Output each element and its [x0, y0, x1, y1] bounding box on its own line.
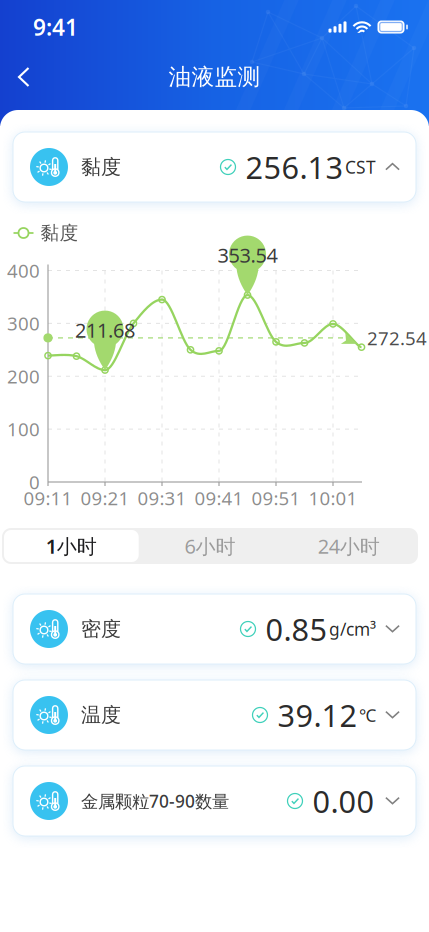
staticText: 09:51	[251, 486, 300, 510]
staticText: 39.12	[277, 695, 357, 735]
staticText: ℃	[359, 703, 376, 726]
staticText: 211.68	[75, 317, 135, 343]
staticText: 400	[7, 258, 40, 283]
staticText: 24小时	[318, 533, 380, 559]
staticText: 300	[7, 311, 40, 336]
staticText: 9:41	[33, 12, 78, 42]
button[interactable]: 温度	[0, 680, 429, 750]
button[interactable]: 1小时	[2, 528, 141, 564]
staticText: 200	[7, 364, 40, 389]
staticText: 256.13	[245, 147, 343, 187]
staticText: 09:31	[137, 486, 186, 510]
staticText: 1小时	[46, 533, 97, 559]
staticText: 温度	[81, 703, 121, 727]
staticText: 黏度	[40, 221, 78, 244]
staticText: 0.85	[265, 609, 327, 649]
staticText: CST	[345, 155, 376, 178]
staticText: 密度	[81, 617, 121, 641]
staticText: 09:11	[23, 486, 72, 510]
staticText: 272.54	[367, 325, 427, 350]
staticText: 09:41	[194, 486, 243, 510]
staticText: 0	[29, 470, 40, 494]
button[interactable]: Back	[0, 57, 44, 97]
staticText: 黏度	[81, 155, 121, 179]
staticText: 6小时	[184, 533, 235, 559]
staticText: 09:21	[80, 486, 129, 510]
staticText: 353.54	[217, 242, 277, 268]
button[interactable]: 金属颗粒70-90数量	[0, 766, 429, 836]
button[interactable]: 6小时	[141, 528, 279, 564]
staticText: 金属颗粒70-90数量	[81, 789, 229, 812]
staticText: 0.00	[312, 781, 374, 821]
staticText: 10:01	[308, 486, 357, 510]
button[interactable]: 24小时	[279, 528, 418, 564]
staticText: g/cm³	[329, 617, 376, 640]
button[interactable]: 密度	[0, 594, 429, 664]
button[interactable]: 黏度	[0, 132, 429, 202]
staticText: 100	[7, 417, 40, 441]
staticText: 油液监测	[168, 63, 260, 91]
